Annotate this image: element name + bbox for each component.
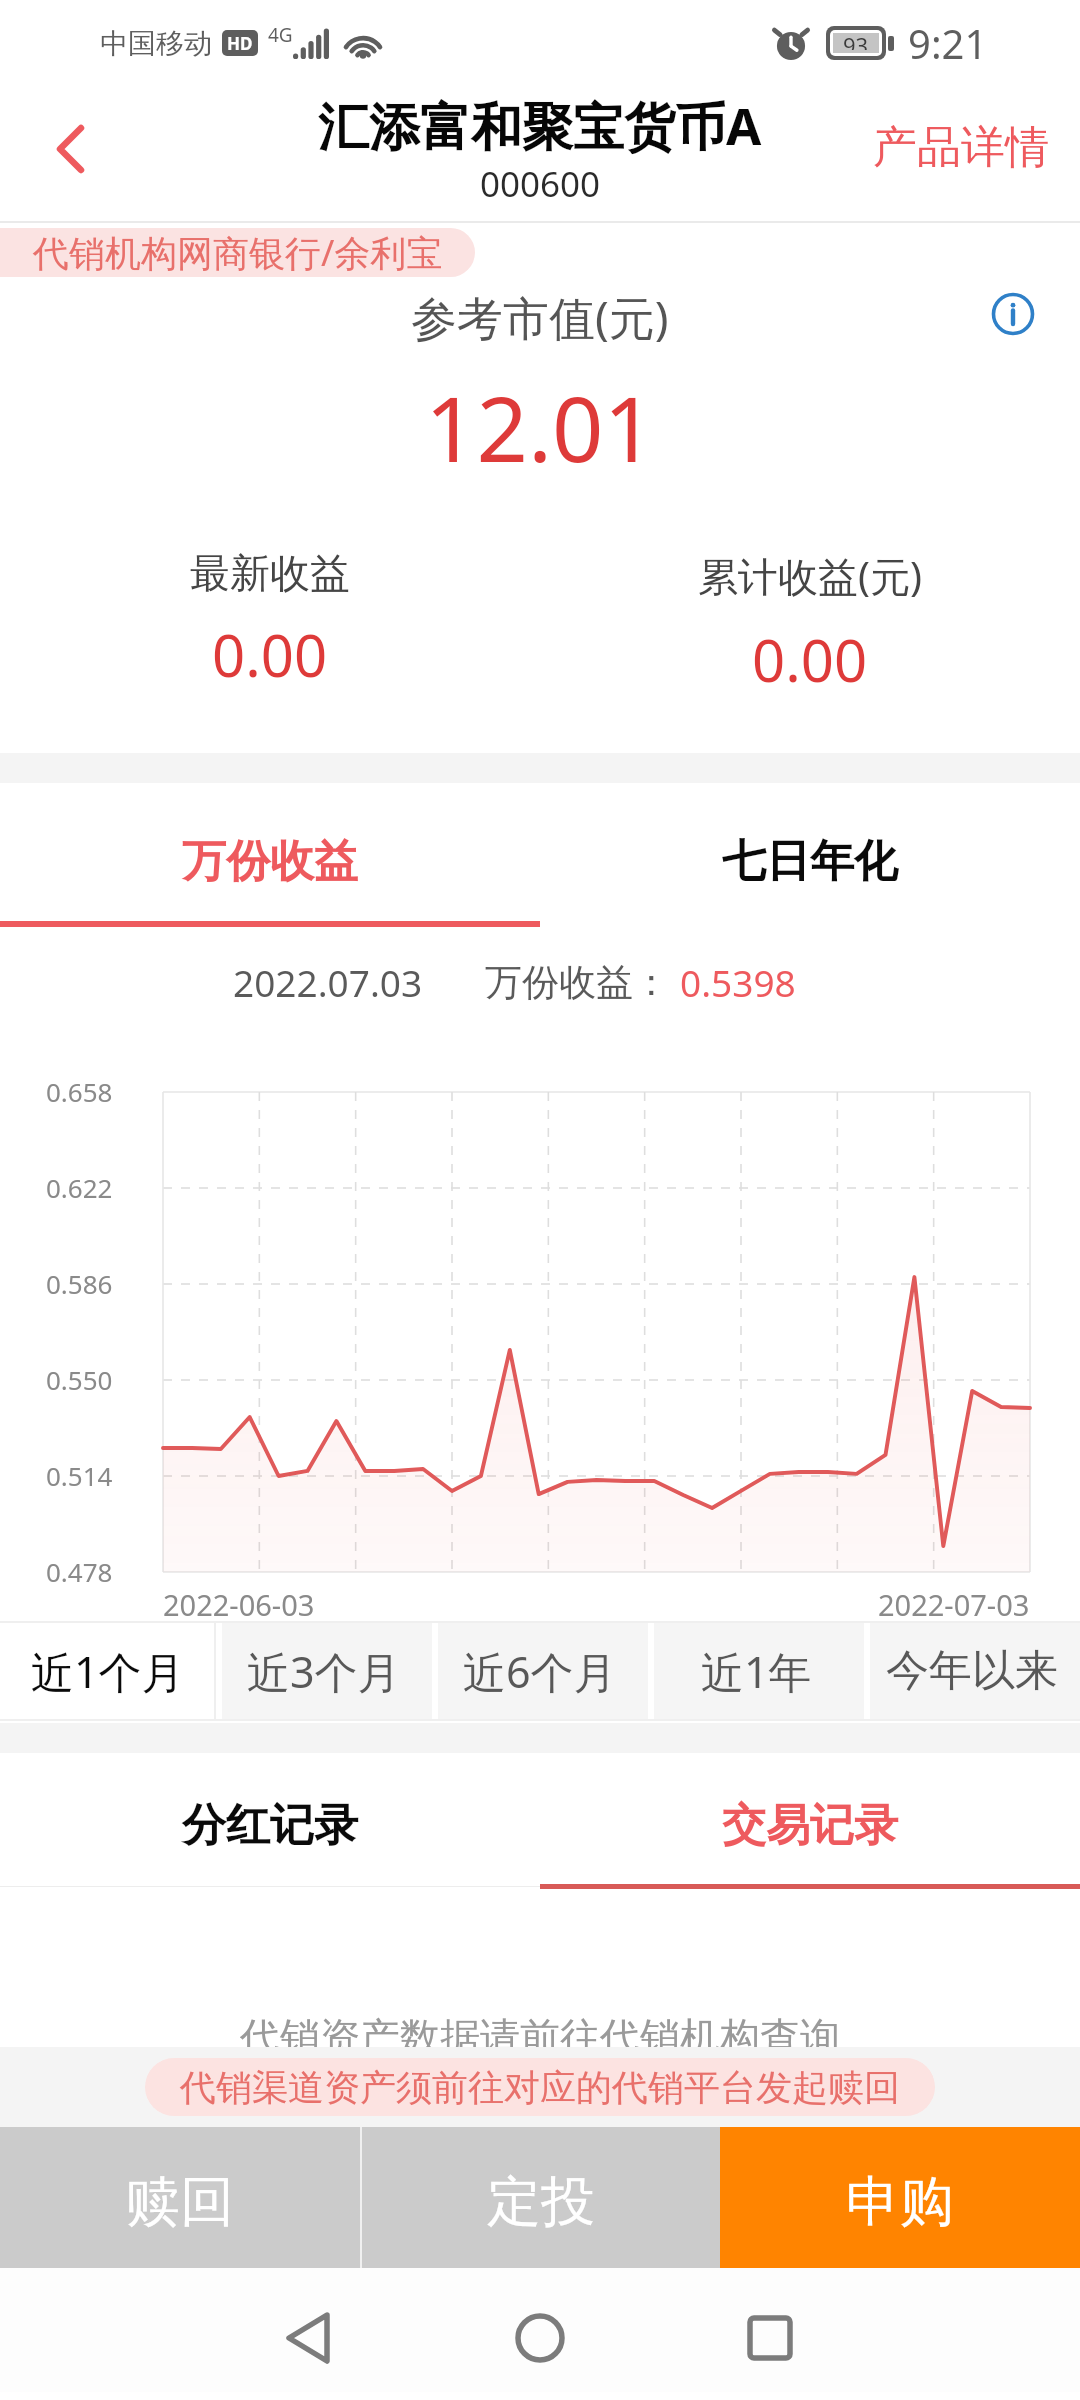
- staticText: 近6个月: [463, 1642, 617, 1701]
- staticText: 12.01: [425, 366, 656, 489]
- staticText: 9:21: [908, 16, 988, 70]
- button[interactable]: Back: [0, 94, 140, 204]
- staticText: HD: [227, 32, 253, 55]
- button[interactable]: 七日年化: [540, 789, 1080, 934]
- button[interactable]: 交易记录: [540, 1758, 1080, 1893]
- button[interactable]: 今年以来: [864, 1621, 1080, 1721]
- staticText: 0.5398: [680, 957, 796, 1007]
- button[interactable]: Back: [248, 2278, 368, 2398]
- staticText: 七日年化: [722, 834, 898, 889]
- staticText: 定投: [487, 2168, 595, 2236]
- staticText: 申购: [846, 2168, 954, 2236]
- button[interactable]: 赎回: [0, 2127, 360, 2276]
- staticText: 交易记录: [722, 1798, 898, 1853]
- staticText: 分红记录: [182, 1798, 358, 1853]
- staticText: 0.514: [46, 1458, 113, 1493]
- staticText: 累计收益(元): [698, 548, 922, 603]
- button[interactable]: 分红记录: [0, 1758, 540, 1893]
- staticText: 0.00: [212, 615, 328, 694]
- button[interactable]: 近1年: [648, 1621, 864, 1721]
- staticText: 0.00: [752, 620, 868, 699]
- staticText: 93: [843, 30, 869, 50]
- staticText: 近3个月: [247, 1642, 401, 1701]
- button[interactable]: 申购: [720, 2127, 1080, 2276]
- staticText: 近1个月: [31, 1642, 185, 1701]
- staticText: 汇添富和聚宝货币A: [318, 90, 762, 160]
- staticText: 2022.07.03: [233, 957, 423, 1007]
- button[interactable]: 近6个月: [432, 1621, 648, 1721]
- button[interactable]: 近1个月: [0, 1621, 216, 1721]
- staticText: 000600: [480, 160, 601, 208]
- staticText: 代销资产数据请前往代销机构查询: [240, 2012, 840, 2059]
- staticText: 代销渠道资产须前往对应的代销平台发起赎回: [180, 2065, 900, 2110]
- staticText: 万份收益：: [485, 959, 670, 1006]
- staticText: 0.550: [46, 1362, 113, 1397]
- button[interactable]: 产品详情: [873, 112, 1049, 182]
- staticText: 0.622: [46, 1170, 113, 1205]
- staticText: 近1年: [701, 1642, 812, 1701]
- staticText: 0.478: [46, 1554, 113, 1589]
- staticText: 代销机构网商银行/余利宝: [33, 228, 443, 277]
- staticText: 万份收益: [182, 834, 358, 889]
- staticText: 参考市值(元): [411, 286, 669, 349]
- staticText: 中国移动: [100, 26, 212, 61]
- button[interactable]: Home: [480, 2278, 600, 2398]
- staticText: 今年以来: [886, 1644, 1058, 1698]
- staticText: 赎回: [126, 2168, 234, 2236]
- staticText: 2022-06-03: [163, 1585, 315, 1624]
- button[interactable]: Info: [988, 289, 1038, 339]
- staticText: 最新收益: [190, 548, 350, 598]
- staticText: 4G: [268, 22, 293, 48]
- button[interactable]: 万份收益: [0, 789, 540, 934]
- button[interactable]: 定投: [362, 2127, 720, 2276]
- staticText: 0.586: [46, 1266, 113, 1301]
- staticText: 2022-07-03: [878, 1585, 1030, 1624]
- button[interactable]: 近3个月: [216, 1621, 432, 1721]
- staticText: 0.658: [46, 1074, 113, 1109]
- staticText: 产品详情: [873, 120, 1049, 175]
- button[interactable]: Recent apps: [710, 2278, 830, 2398]
